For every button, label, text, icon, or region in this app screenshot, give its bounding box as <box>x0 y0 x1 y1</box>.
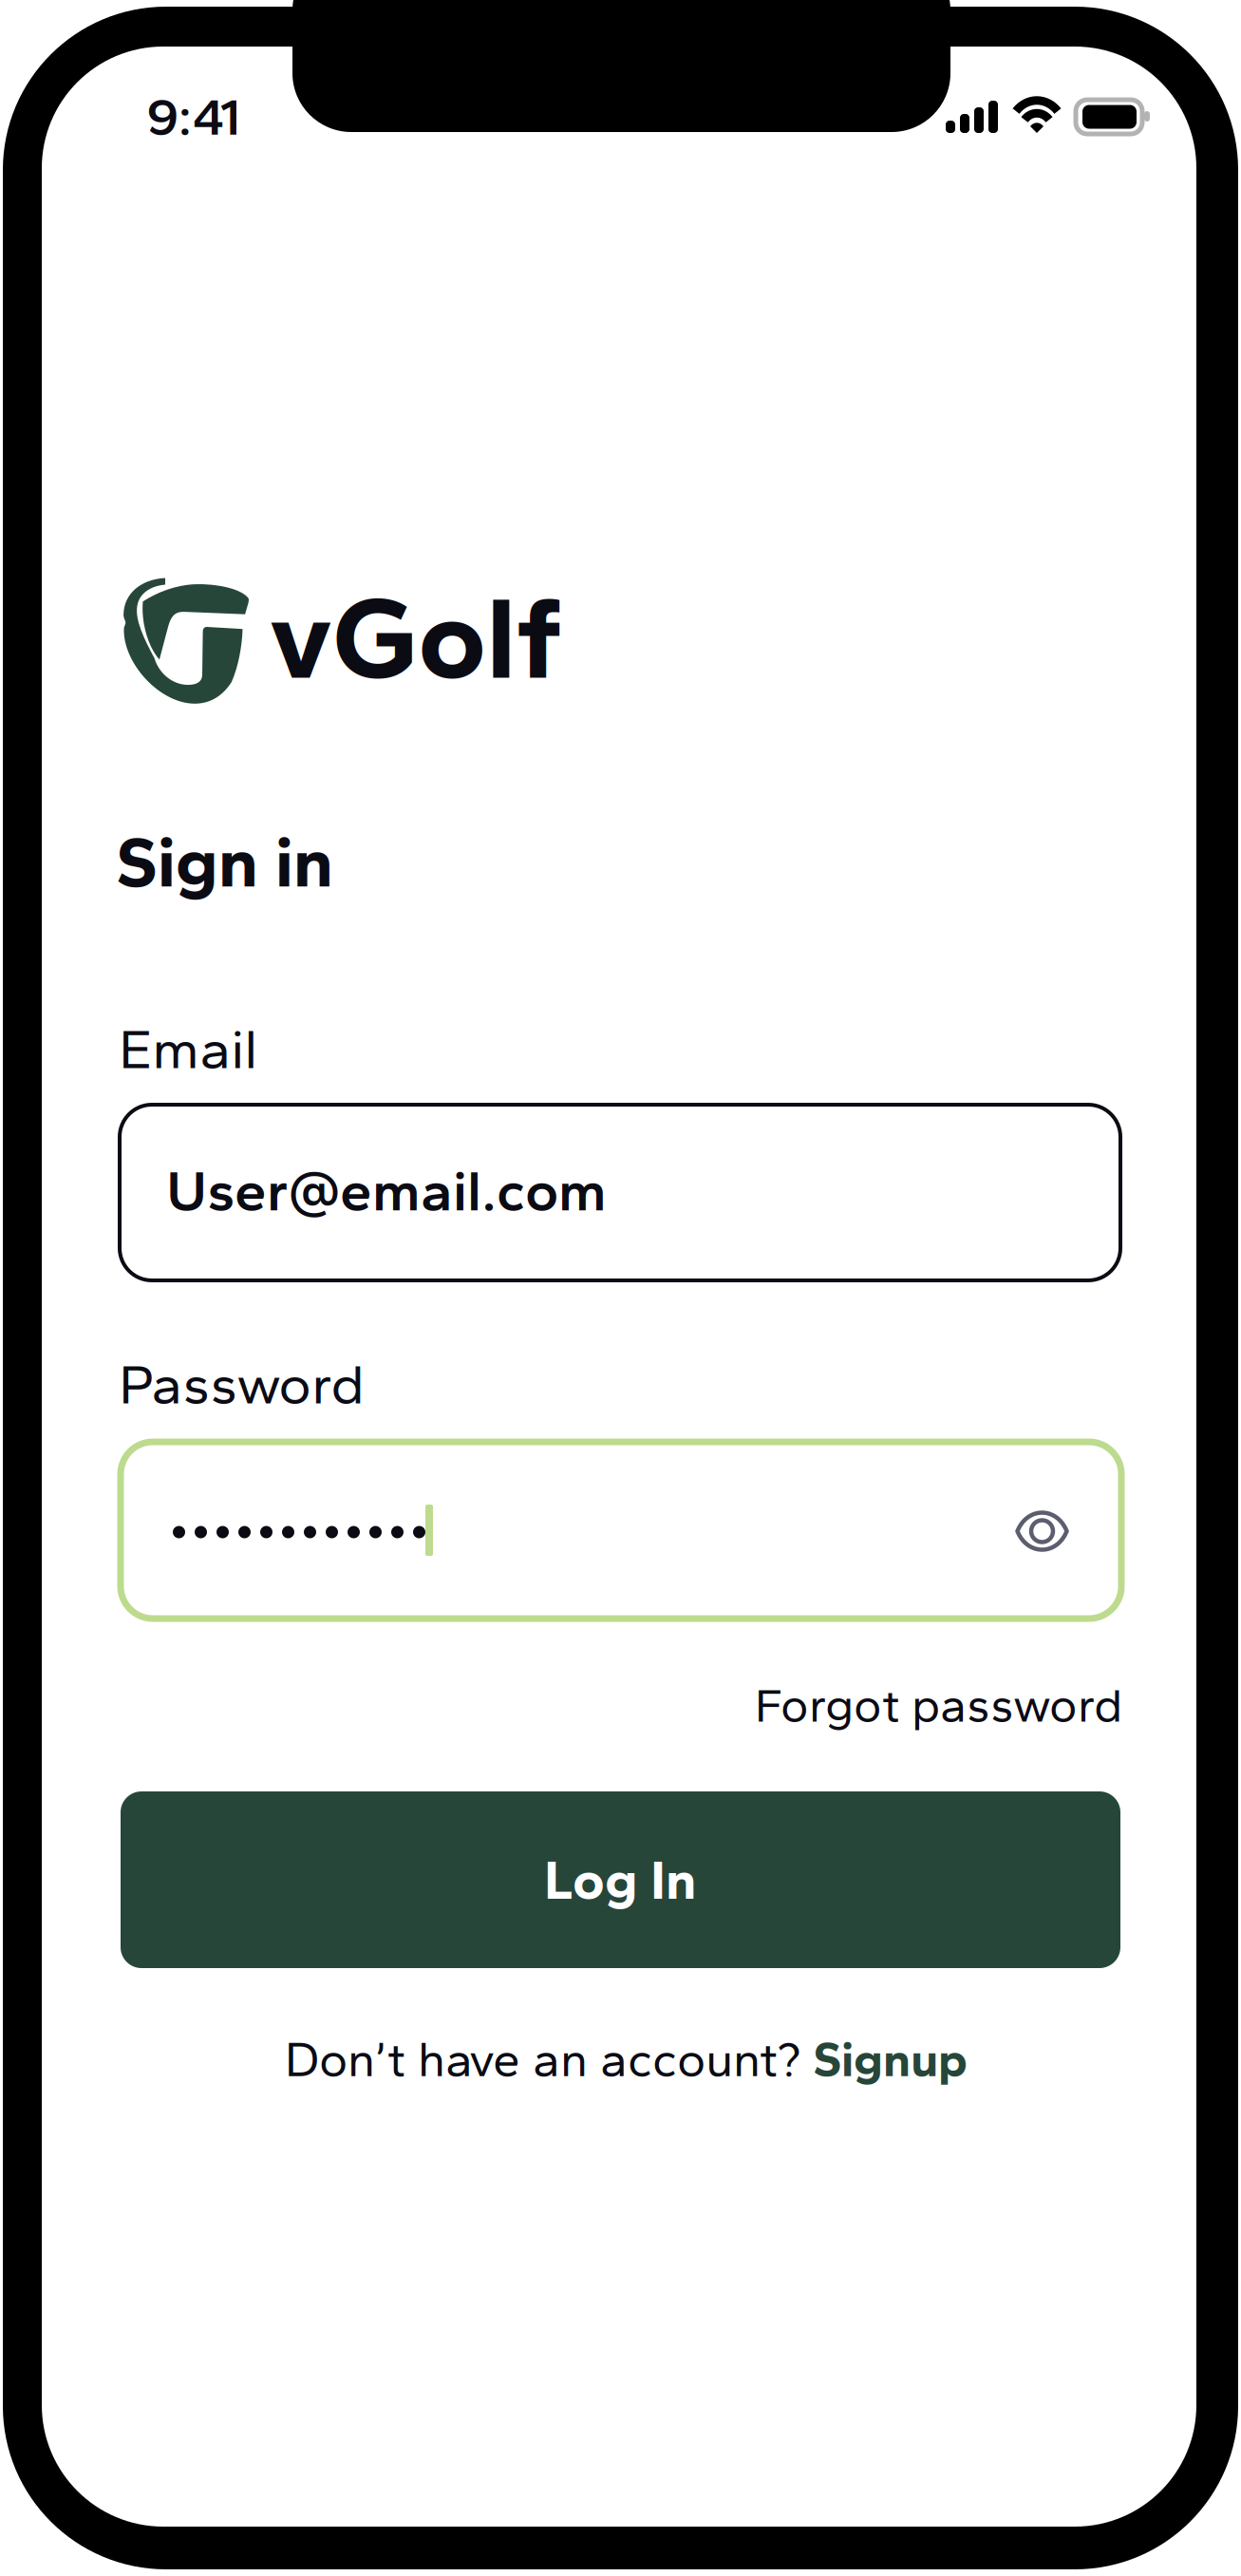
button[interactable]: Show password <box>1015 1513 1069 1549</box>
staticText: Email <box>119 1015 258 1082</box>
staticText: Forgot password <box>755 1676 1122 1733</box>
staticText: User@email.com <box>166 1156 607 1225</box>
staticText: Don’t have an account? <box>285 2030 813 2088</box>
button[interactable]: Log In <box>121 1791 1120 1968</box>
button[interactable]: Forgot password <box>755 1676 1122 1733</box>
button[interactable]: Signup <box>813 2030 968 2088</box>
staticText: 9:41 <box>147 85 241 148</box>
staticText: Signup <box>813 2030 968 2088</box>
staticText: Password <box>119 1350 365 1417</box>
staticText: vGolf <box>270 567 561 707</box>
staticText: Log In <box>544 1847 697 1912</box>
staticText: Sign in <box>116 819 334 904</box>
